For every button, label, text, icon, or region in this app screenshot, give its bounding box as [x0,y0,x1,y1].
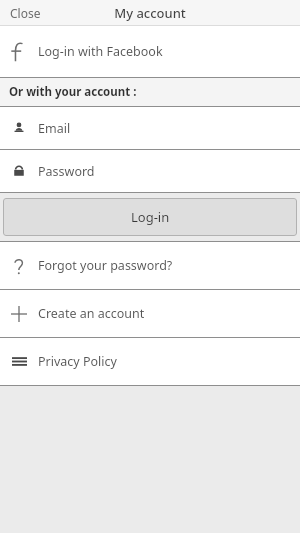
staticText: Log-in with Facebook [38,43,163,60]
button[interactable]: Email [0,107,300,149]
staticText: Close [10,5,41,21]
button[interactable]: Log-in with Facebook [0,26,300,77]
staticText: Email [38,120,71,137]
staticText: Password [38,163,95,180]
staticText: Forgot your password? [38,257,173,274]
button[interactable]: Privacy Policy [0,338,300,385]
staticText: Or with your account : [9,84,137,100]
button[interactable]: Close [0,1,51,25]
button[interactable]: Create an account [0,290,300,337]
button[interactable]: Log-in [3,198,297,236]
button[interactable]: Forgot your password? [0,242,300,289]
staticText: Privacy Policy [38,353,117,370]
button[interactable]: Password [0,150,300,192]
staticText: Log-in [131,208,170,226]
staticText: Create an account [38,305,145,322]
staticText: My account [114,4,186,22]
